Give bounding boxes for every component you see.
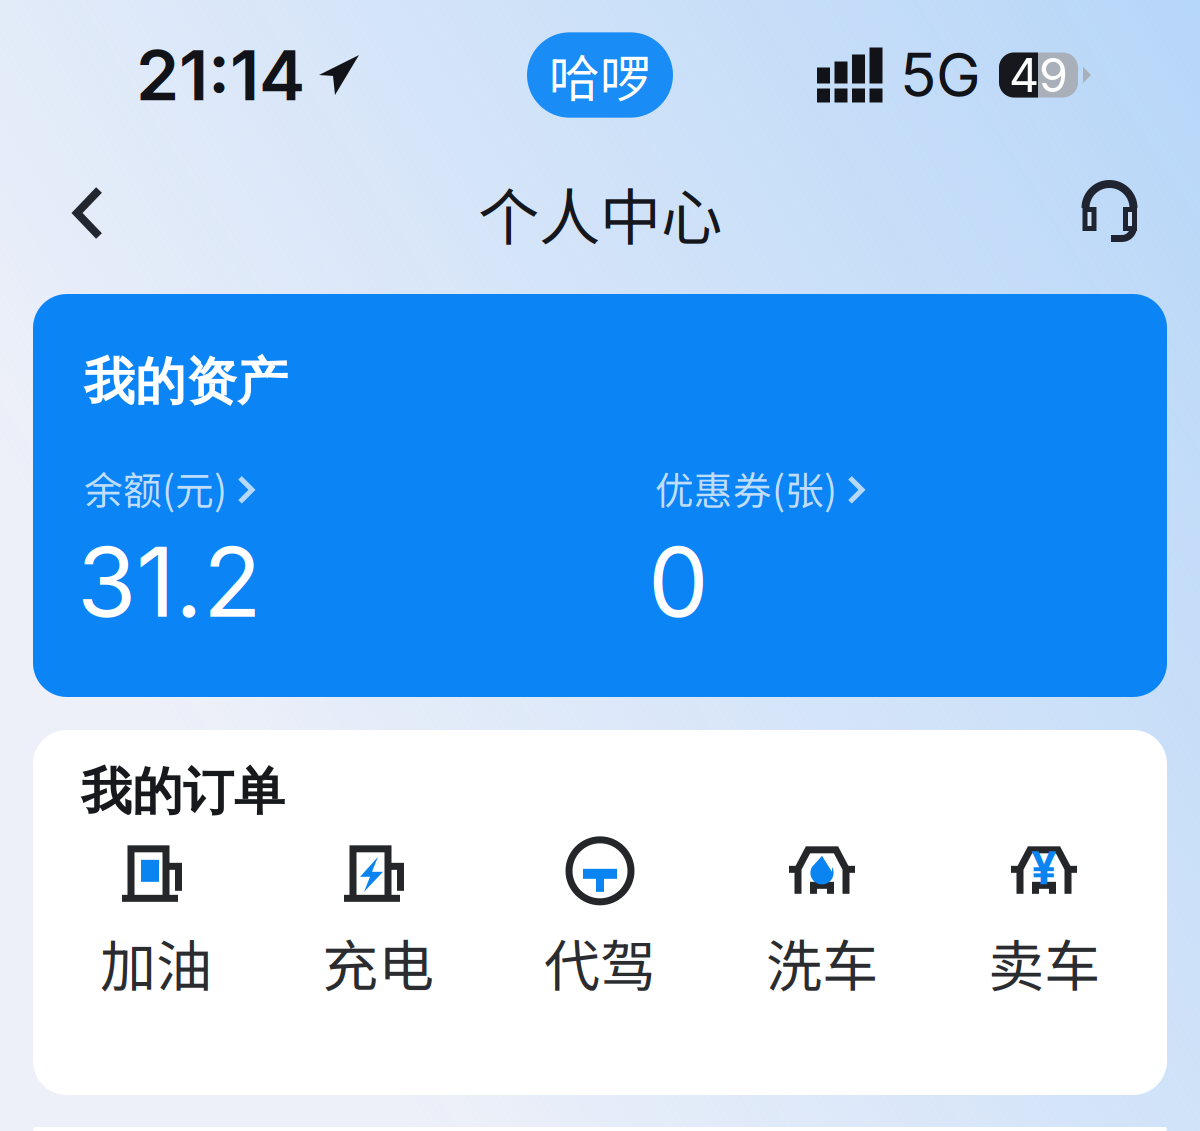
button[interactable]: ¥ <box>933 836 1155 1003</box>
staticText: 充电 <box>322 922 434 1003</box>
button[interactable]: 充电 <box>267 836 489 1003</box>
staticText: 21:14 <box>136 33 305 117</box>
button[interactable]: 余额(元) <box>84 460 655 640</box>
staticText: 我的订单 <box>81 760 285 824</box>
staticText: ¥ <box>1031 840 1057 895</box>
staticText: 49 <box>1009 47 1068 103</box>
staticText: 洗车 <box>766 922 878 1003</box>
button[interactable]: Back <box>46 167 130 259</box>
button[interactable]: 加油 <box>45 836 267 1003</box>
button[interactable]: Customer service <box>1065 165 1154 261</box>
staticText: 加油 <box>100 922 212 1003</box>
staticText: 代驾 <box>544 922 656 1003</box>
staticText: 哈啰 <box>549 38 651 112</box>
staticText: 5G <box>900 39 981 111</box>
staticText: 卖车 <box>988 922 1100 1003</box>
staticText: 个人中心 <box>478 169 722 257</box>
button[interactable]: 洗车 <box>711 836 933 1003</box>
staticText: 优惠券(张) <box>655 460 837 516</box>
staticText: 我的资产 <box>84 350 288 414</box>
staticText: 0 <box>648 524 709 640</box>
button[interactable]: 代驾 <box>489 836 711 1003</box>
button[interactable]: 优惠券(张) <box>655 460 891 640</box>
staticText: 余额(元) <box>84 460 227 516</box>
staticText: 31.2 <box>77 524 262 640</box>
